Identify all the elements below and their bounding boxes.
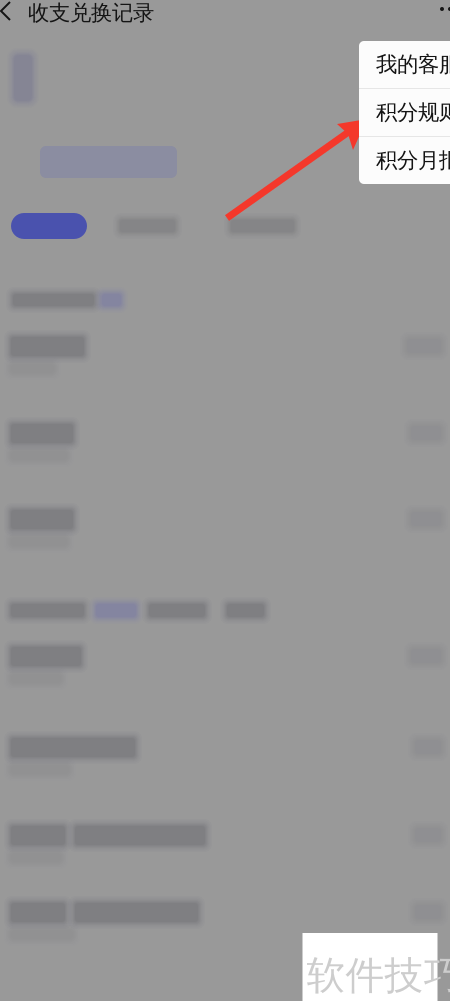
button[interactable]: 积分月报 (359, 137, 450, 184)
staticText: 收支兑换记录 (28, 0, 154, 26)
staticText: 积分月报 (376, 147, 450, 174)
button[interactable]: Back (2, 0, 24, 26)
button[interactable]: More options (430, 0, 450, 26)
staticText: 软件技巧 (306, 952, 450, 999)
staticText: 我的客服 (376, 51, 450, 78)
button[interactable]: 我的客服 (359, 41, 450, 88)
button[interactable]: 积分规则 (359, 89, 450, 136)
staticText: 积分规则 (376, 99, 450, 126)
